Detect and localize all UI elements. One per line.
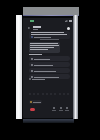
button[interactable]: Account — [67, 27, 70, 30]
button[interactable] — [29, 62, 70, 67]
button[interactable] — [29, 31, 70, 39]
button[interactable]: Record — [30, 108, 35, 111]
button[interactable]: Back — [28, 25, 70, 31]
other: Back — [28, 27, 30, 29]
button[interactable]: Discover — [58, 107, 64, 111]
button[interactable] — [29, 56, 70, 61]
button[interactable]: Home — [51, 107, 57, 111]
button[interactable] — [30, 100, 41, 104]
button[interactable] — [29, 42, 60, 53]
button[interactable] — [29, 74, 70, 79]
button[interactable] — [29, 78, 45, 80]
button[interactable]: Library — [64, 107, 70, 111]
button[interactable] — [29, 68, 70, 73]
